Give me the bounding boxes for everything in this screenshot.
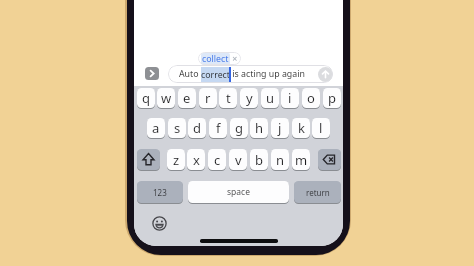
button[interactable]: h bbox=[250, 118, 268, 138]
staticText: v bbox=[235, 151, 242, 169]
staticText: m bbox=[295, 151, 308, 169]
staticText: × bbox=[230, 53, 238, 65]
button[interactable]: v bbox=[229, 149, 247, 170]
button[interactable]: collect bbox=[198, 52, 241, 65]
button[interactable]: x bbox=[187, 149, 205, 170]
staticText: u bbox=[266, 89, 275, 107]
button[interactable]: Auto bbox=[168, 65, 333, 83]
staticText: a bbox=[152, 119, 160, 137]
button[interactable]: m bbox=[292, 149, 310, 170]
button[interactable]: i bbox=[281, 88, 299, 108]
staticText: o bbox=[307, 89, 315, 107]
button[interactable]: l bbox=[312, 118, 330, 138]
button[interactable]: z bbox=[167, 149, 185, 170]
staticText: s bbox=[174, 119, 181, 137]
staticText: p bbox=[328, 89, 336, 107]
staticText: y bbox=[246, 89, 253, 107]
button[interactable]: 123 bbox=[137, 181, 183, 203]
staticText: e bbox=[183, 89, 191, 107]
staticText: correct bbox=[201, 69, 230, 81]
staticText: collect bbox=[202, 53, 229, 65]
staticText: space bbox=[227, 186, 250, 198]
staticText: z bbox=[173, 151, 180, 169]
button[interactable]: return bbox=[294, 181, 341, 203]
staticText: is acting up again bbox=[230, 68, 305, 80]
staticText: k bbox=[298, 119, 305, 137]
button[interactable]: d bbox=[188, 118, 206, 138]
button[interactable] bbox=[152, 216, 167, 231]
staticText: l bbox=[319, 119, 323, 137]
staticText: d bbox=[193, 119, 201, 137]
staticText: t bbox=[226, 89, 231, 107]
staticText: i bbox=[288, 89, 292, 107]
staticText: w bbox=[161, 89, 172, 107]
button[interactable]: e bbox=[178, 88, 196, 108]
button[interactable] bbox=[318, 149, 341, 170]
staticText: n bbox=[276, 151, 285, 169]
button[interactable]: y bbox=[240, 88, 258, 108]
button[interactable]: space bbox=[188, 181, 289, 203]
staticText: return bbox=[306, 187, 330, 198]
button[interactable]: c bbox=[208, 149, 226, 170]
staticText: g bbox=[235, 119, 243, 137]
button[interactable]: a bbox=[147, 118, 165, 138]
staticText: j bbox=[278, 119, 282, 137]
button[interactable] bbox=[137, 149, 160, 170]
button[interactable]: t bbox=[219, 88, 237, 108]
button[interactable]: o bbox=[302, 88, 320, 108]
staticText: r bbox=[205, 89, 211, 107]
button[interactable] bbox=[145, 67, 159, 80]
staticText: b bbox=[255, 151, 263, 169]
button[interactable]: b bbox=[250, 149, 268, 170]
staticText: c bbox=[214, 151, 221, 169]
staticText: h bbox=[255, 119, 264, 137]
button[interactable]: k bbox=[292, 118, 310, 138]
button[interactable]: u bbox=[261, 88, 279, 108]
staticText: f bbox=[216, 119, 221, 137]
button[interactable]: g bbox=[230, 118, 248, 138]
button[interactable]: s bbox=[168, 118, 186, 138]
button[interactable] bbox=[318, 67, 333, 82]
button[interactable]: n bbox=[271, 149, 289, 170]
button[interactable]: f bbox=[209, 118, 227, 138]
button[interactable]: w bbox=[157, 88, 175, 108]
button[interactable]: p bbox=[323, 88, 341, 108]
staticText: 123 bbox=[153, 187, 167, 198]
button[interactable]: j bbox=[271, 118, 289, 138]
button[interactable]: q bbox=[137, 88, 155, 108]
staticText: Auto bbox=[179, 68, 201, 80]
staticText: q bbox=[142, 89, 150, 107]
button[interactable]: r bbox=[199, 88, 217, 108]
staticText: x bbox=[193, 151, 200, 169]
